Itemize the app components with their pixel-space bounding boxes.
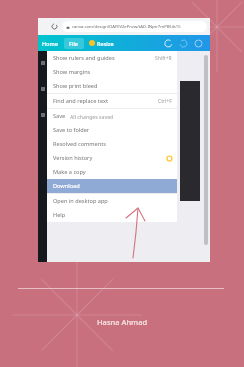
button[interactable]: canva.com/design/DAFEV2ePnvw/tAD-INptr7m… (62, 21, 207, 32)
button[interactable]: Cloud save (194, 39, 203, 48)
button[interactable]: Redo (179, 39, 188, 48)
staticText: Ctrl+F (158, 98, 172, 105)
button[interactable]: Show rulers and guides (47, 51, 177, 65)
staticText: Show print bleed (53, 82, 98, 90)
button[interactable]: Undo (164, 39, 173, 48)
button[interactable]: Home (42, 40, 58, 47)
staticText: Save to folder (53, 126, 90, 134)
staticText: Shift+R (155, 55, 172, 62)
staticText: All changes saved (70, 113, 114, 120)
staticText: Hasna Ahmad (97, 317, 148, 327)
button[interactable]: Reload (50, 22, 59, 31)
button[interactable]: Help (47, 208, 177, 222)
button[interactable]: Show print bleed (47, 79, 177, 93)
button[interactable]: Download (47, 179, 177, 193)
button[interactable]: Show margins (47, 65, 177, 79)
button[interactable]: Save (47, 109, 177, 123)
button[interactable]: File (64, 38, 84, 49)
button[interactable]: Make a copy (47, 165, 177, 179)
staticText: Show rulers and guides (53, 54, 115, 62)
staticText: Version history (53, 154, 93, 162)
staticText: Help (53, 211, 66, 219)
staticText: Download (53, 182, 80, 190)
staticText: Show margins (53, 68, 91, 76)
button[interactable]: Open in desktop app (47, 194, 177, 208)
staticText: canva.com/design/DAFEV2ePnvw/tAD-INptr7m… (72, 24, 181, 30)
staticText: Find and replace text (53, 97, 108, 105)
button[interactable]: Resize (97, 40, 114, 47)
staticText: Save (53, 112, 66, 120)
button[interactable]: Resolved comments (47, 137, 177, 151)
button[interactable]: Find and replace text (47, 94, 177, 108)
staticText: Resolved comments (53, 140, 106, 148)
button[interactable]: Version history (47, 151, 177, 165)
staticText: File (69, 40, 79, 47)
staticText: Open in desktop app (53, 197, 108, 205)
button[interactable]: Save to folder (47, 123, 177, 137)
staticText: Make a copy (53, 168, 86, 176)
